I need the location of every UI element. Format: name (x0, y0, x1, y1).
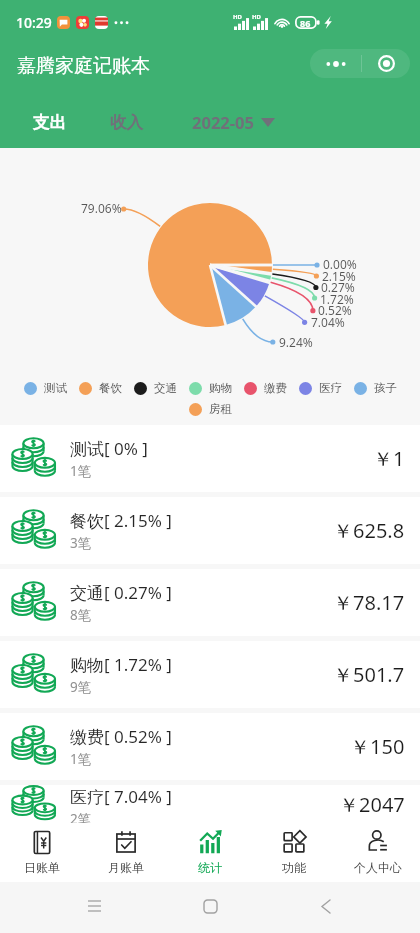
staticText: 个人中心 (354, 860, 402, 875)
staticText: 1.72% (320, 291, 354, 307)
staticText: 3笔 (70, 534, 92, 552)
staticText: 0.52% (318, 302, 352, 318)
staticText: ￥150 (350, 733, 405, 760)
button[interactable]: 2022-05 (192, 96, 284, 148)
staticText: 医疗 (319, 381, 342, 395)
button[interactable]: 医疗[ 7.04% ] (0, 785, 420, 823)
staticText: 79.06% (81, 200, 122, 216)
staticText: 1笔 (70, 750, 92, 768)
button[interactable]: 统计 (168, 823, 252, 882)
staticText: ￥2047 (339, 791, 405, 818)
staticText: 2.15% (322, 268, 356, 284)
staticText: 功能 (282, 860, 306, 875)
staticText: 餐饮[ 2.15% ] (70, 509, 172, 532)
button[interactable]: 餐饮[ 2.15% ] (0, 497, 420, 564)
staticText: ￥78.17 (333, 589, 405, 616)
staticText: 10:29 (16, 13, 52, 32)
staticText: 0.00% (323, 256, 357, 272)
staticText: 收入 (110, 112, 143, 133)
button[interactable]: Home (188, 884, 232, 928)
staticText: 8笔 (70, 606, 92, 624)
button[interactable]: 购物[ 1.72% ] (0, 641, 420, 708)
staticText: 孩子 (374, 381, 397, 395)
staticText: 86 (300, 17, 311, 29)
staticText: 统计 (198, 860, 222, 875)
staticText: 测试[ 0% ] (70, 437, 148, 460)
button[interactable]: 交通[ 0.27% ] (0, 569, 420, 636)
button[interactable]: Recents (72, 884, 116, 928)
button[interactable]: 个人中心 (336, 823, 420, 882)
staticText: 嘉腾家庭记账本 (17, 54, 150, 78)
staticText: 交通 (154, 381, 177, 395)
staticText: 交通[ 0.27% ] (70, 581, 172, 604)
staticText: 缴费 (264, 381, 287, 395)
staticText: 房租 (209, 402, 232, 416)
staticText: 2笔 (70, 810, 92, 823)
staticText: 购物[ 1.72% ] (70, 653, 172, 676)
staticText: 0.27% (321, 279, 355, 295)
button[interactable]: 收入 (95, 96, 157, 148)
staticText: ￥501.7 (333, 661, 405, 688)
button[interactable]: 支出 (18, 96, 80, 148)
staticText: HD (233, 13, 242, 21)
staticText: 2022-05 (192, 111, 254, 133)
button[interactable]: 功能 (252, 823, 336, 882)
button[interactable]: 月账单 (84, 823, 168, 882)
button[interactable]: More (310, 49, 361, 78)
button[interactable]: 日账单 (0, 823, 84, 882)
staticText: 9笔 (70, 678, 92, 696)
button[interactable]: 缴费[ 0.52% ] (0, 713, 420, 780)
staticText: 日账单 (24, 860, 60, 875)
staticText: 1笔 (70, 462, 92, 480)
staticText: 餐饮 (99, 381, 122, 395)
staticText: 7.04% (311, 314, 345, 330)
staticText: 测试 (44, 381, 67, 395)
button[interactable]: Back (304, 884, 348, 928)
button[interactable]: 测试[ 0% ] (0, 425, 420, 492)
staticText: 支出 (33, 112, 66, 133)
staticText: ￥625.8 (333, 517, 405, 544)
button[interactable]: Close (362, 49, 410, 78)
staticText: 月账单 (108, 860, 144, 875)
staticText: 购物 (209, 381, 232, 395)
staticText: ￥1 (373, 445, 405, 472)
staticText: 缴费[ 0.52% ] (70, 725, 172, 748)
staticText: 9.24% (279, 334, 313, 350)
staticText: HD (252, 13, 261, 21)
staticText: 医疗[ 7.04% ] (70, 785, 172, 808)
